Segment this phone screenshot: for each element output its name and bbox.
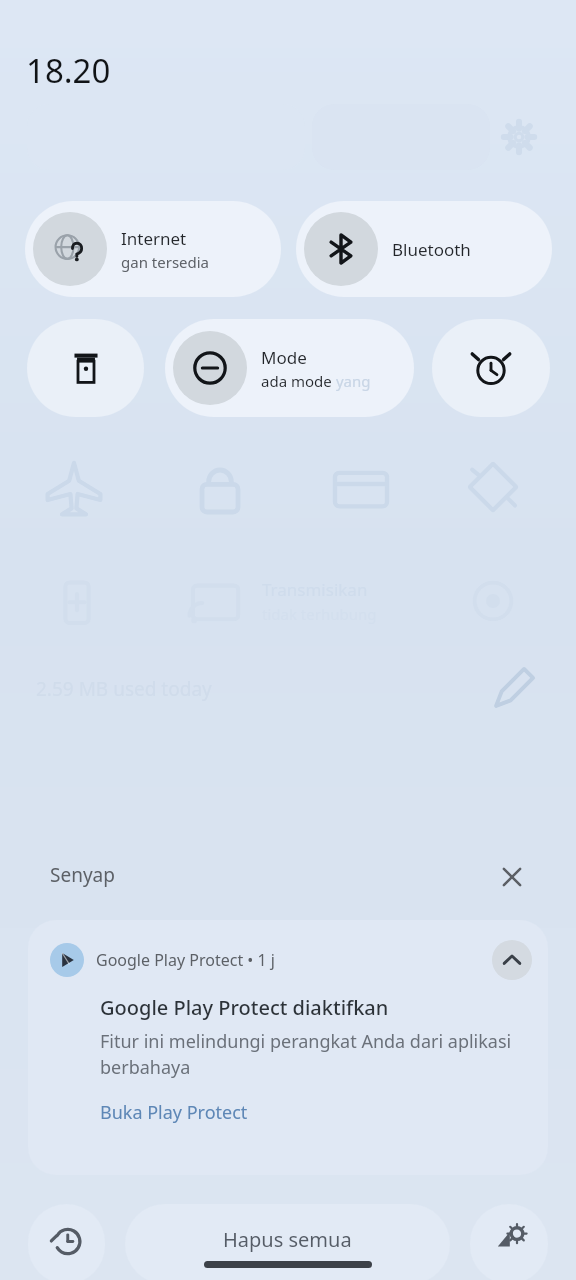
button[interactable]: Senter [27, 319, 144, 417]
staticText: Mode [261, 346, 307, 369]
button[interactable]: Ciutkan [492, 940, 532, 980]
button[interactable]: Riwayat notifikasi [28, 1204, 105, 1280]
staticText: Hapus semua [223, 1226, 352, 1253]
staticText: Fitur ini melindungi perangkat Anda dari… [100, 1029, 530, 1080]
button[interactable]: Google Play Protect • 1 j [28, 920, 548, 1175]
button[interactable]: Alarm [432, 319, 550, 417]
button[interactable]: Hapus semua [125, 1204, 450, 1280]
staticText: Internet [121, 227, 187, 250]
staticText: ada mode [261, 371, 332, 391]
button[interactable]: Internet [25, 201, 281, 297]
staticText: Google Play Protect • 1 j [96, 949, 275, 971]
button[interactable]: Setelan notifikasi [470, 1204, 548, 1280]
button[interactable]: Mode [165, 319, 414, 417]
button[interactable]: Buka Play Protect [100, 1100, 248, 1125]
staticText: yang [332, 371, 371, 391]
staticText: 18.20 [26, 48, 111, 93]
staticText: Bluetooth [392, 238, 471, 261]
staticText: Google Play Protect diaktifkan [100, 994, 389, 1021]
staticText: gan tersedia [121, 252, 210, 272]
button[interactable]: Bluetooth [296, 201, 552, 297]
staticText: Senyap [50, 862, 115, 888]
staticText: Buka Play Protect [100, 1100, 248, 1125]
button[interactable]: Tutup [492, 857, 532, 897]
